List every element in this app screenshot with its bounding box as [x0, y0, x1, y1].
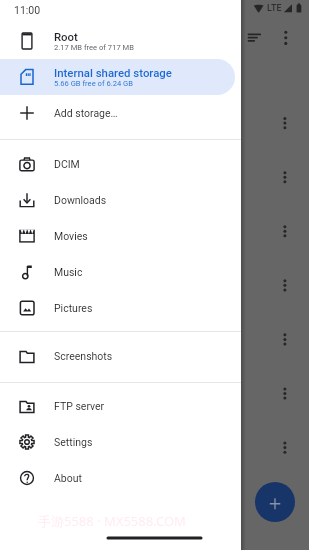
staticText: Add storage… [54, 107, 118, 119]
staticText: Music [54, 266, 83, 278]
button[interactable]: Add storage… [0, 95, 241, 131]
staticText: Internal shared storage [54, 66, 172, 79]
staticText: Pictures [54, 302, 93, 314]
staticText: Screenshots [54, 350, 113, 362]
staticText: FTP server [54, 400, 105, 412]
staticText: About [54, 472, 82, 484]
staticText: Downloads [54, 194, 107, 206]
button[interactable]: Downloads [0, 182, 241, 218]
button[interactable]: Add [255, 482, 295, 522]
button[interactable]: Root [0, 23, 235, 59]
button[interactable]: Internal shared storage [0, 59, 235, 95]
staticText: 5.66 GB free of 6.24 GB [54, 79, 134, 88]
staticText: Movies [54, 230, 88, 242]
staticText: 手游5588 · MX5588.COM [38, 512, 186, 530]
staticText: 11:00 [14, 4, 41, 16]
staticText: LTE [267, 3, 282, 14]
staticText: Settings [54, 436, 93, 448]
button[interactable]: About [0, 460, 241, 496]
staticText: Root [54, 30, 78, 43]
button[interactable]: Movies [0, 218, 241, 254]
button[interactable]: Pictures [0, 290, 241, 326]
button[interactable]: Settings [0, 424, 241, 460]
button[interactable]: FTP server [0, 388, 241, 424]
staticText: 2.17 MB free of 717 MB [54, 43, 134, 52]
staticText: DCIM [54, 158, 80, 170]
button[interactable]: Screenshots [0, 338, 241, 374]
button[interactable]: DCIM [0, 146, 241, 182]
button[interactable]: Music [0, 254, 241, 290]
